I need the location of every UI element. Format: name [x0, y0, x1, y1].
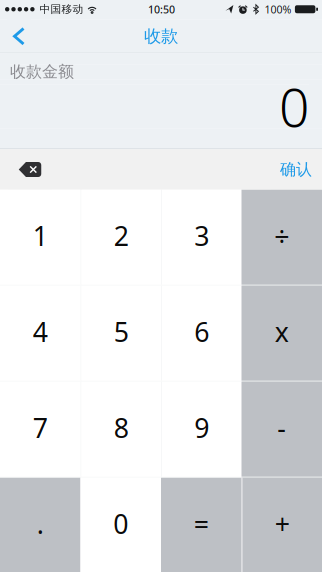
staticText: 7	[33, 410, 48, 445]
staticText: 5	[114, 314, 129, 349]
button[interactable]: ÷	[241, 190, 322, 285]
button[interactable]: 7	[0, 382, 80, 477]
button[interactable]: 8	[81, 382, 161, 477]
button[interactable]: +	[242, 478, 322, 572]
button[interactable]: x	[241, 286, 322, 381]
staticText: 2	[114, 218, 129, 253]
staticText: ÷	[274, 218, 289, 253]
staticText: 8	[114, 410, 129, 445]
button[interactable]: Delete	[8, 149, 52, 189]
staticText: 9	[194, 410, 209, 445]
button[interactable]: 1	[0, 190, 80, 285]
button[interactable]: 2	[81, 190, 161, 285]
button[interactable]: 确认	[271, 149, 321, 189]
staticText: 100%	[264, 2, 291, 16]
staticText: =	[194, 506, 209, 541]
staticText: 确认	[280, 160, 312, 179]
button[interactable]: =	[161, 478, 241, 572]
staticText: 中国移动	[40, 3, 84, 16]
staticText: 4	[33, 314, 48, 349]
button[interactable]: 4	[0, 286, 80, 381]
button[interactable]: 0	[80, 478, 161, 572]
button[interactable]: 6	[162, 286, 241, 381]
staticText: 3	[194, 218, 209, 253]
staticText: 收款	[144, 26, 178, 47]
staticText: 6	[194, 314, 209, 349]
staticText: 10:50	[148, 2, 175, 16]
button[interactable]: 5	[81, 286, 161, 381]
staticText: -	[277, 410, 286, 445]
button[interactable]: .	[0, 478, 80, 572]
staticText: 0	[113, 506, 128, 541]
staticText: 收款金额	[10, 62, 74, 82]
button[interactable]: 3	[162, 190, 241, 285]
staticText: 1	[33, 218, 48, 253]
staticText: x	[275, 314, 289, 349]
staticText: .	[37, 506, 44, 541]
staticText: 0	[279, 71, 309, 142]
button[interactable]: 9	[162, 382, 241, 477]
button[interactable]: -	[241, 382, 322, 477]
staticText: +	[275, 506, 290, 541]
button[interactable]: Back	[7, 19, 31, 53]
